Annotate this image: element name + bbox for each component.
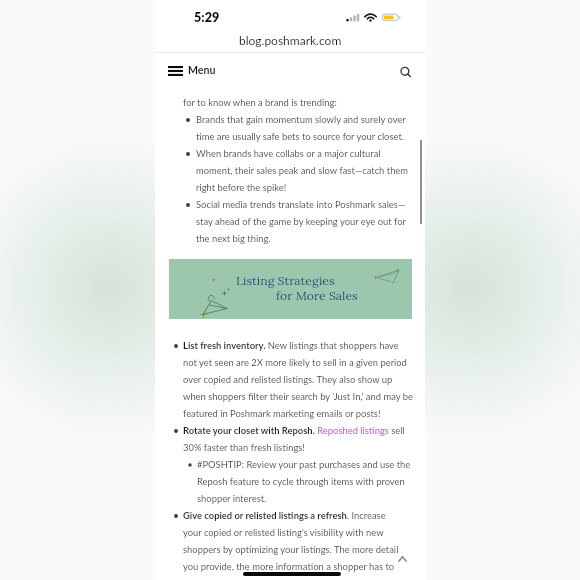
staticText: Rotate your closet with Reposh. Reposhed… xyxy=(183,425,433,453)
staticText: for to know when a brand is trending: xyxy=(183,97,433,108)
staticText: Menu xyxy=(188,64,216,77)
staticText: List fresh inventory. New listings that … xyxy=(183,340,433,419)
staticText: blog.poshmark.com xyxy=(239,33,342,47)
staticText: When brands have collabs or a major cult… xyxy=(196,148,446,193)
staticText: #POSHTIP: Review your past purchases and… xyxy=(197,459,447,504)
staticText: Brands that gain momentum slowly and sur… xyxy=(196,114,446,142)
button[interactable]: Menu xyxy=(164,60,220,81)
staticText: Listing Strategies xyxy=(236,273,335,289)
staticText: for More Sales xyxy=(276,288,358,304)
button[interactable]: Scroll to top xyxy=(392,549,412,569)
staticText: Give copied or relisted listings a refre… xyxy=(183,510,433,580)
staticText: Social media trends translate into Poshm… xyxy=(196,199,446,244)
button[interactable]: Search xyxy=(393,60,417,84)
staticText: 5:29 xyxy=(194,10,220,25)
